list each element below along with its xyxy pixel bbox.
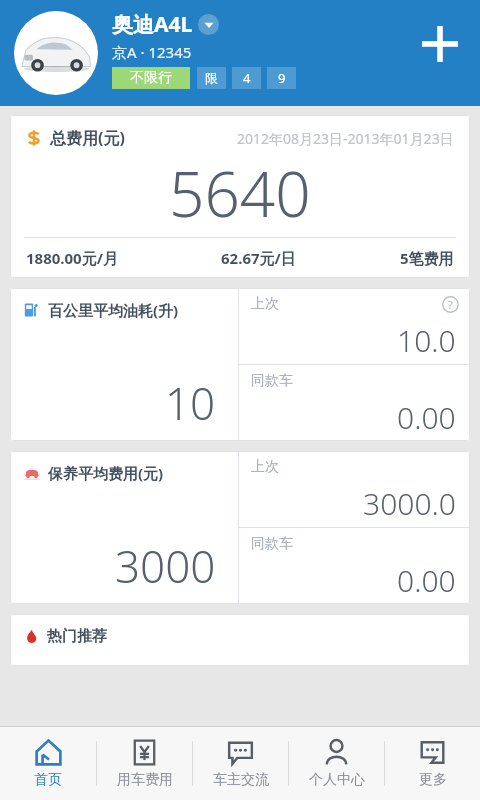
- button[interactable]: 4: [232, 67, 261, 89]
- staticText: 9: [278, 69, 286, 87]
- staticText: 1880.00元/月: [26, 248, 118, 268]
- staticText: 3000: [115, 536, 216, 596]
- staticText: 4: [243, 69, 251, 87]
- staticText: 同款车: [251, 535, 293, 553]
- staticText: 5640: [169, 151, 311, 235]
- staticText: 上次: [251, 295, 279, 313]
- button[interactable]: 用车费用: [97, 727, 192, 800]
- staticText: 不限行: [130, 69, 172, 87]
- button[interactable]: 保养平均费用(元): [10, 451, 238, 604]
- staticText: 奥迪A4L: [112, 10, 193, 39]
- button[interactable]: 同款车: [239, 528, 470, 604]
- staticText: 上次: [251, 458, 279, 476]
- staticText: 0.00: [397, 560, 456, 601]
- staticText: 个人中心: [309, 771, 365, 789]
- staticText: 5笔费用: [400, 248, 454, 268]
- button[interactable]: 热门推荐: [10, 614, 470, 666]
- staticText: 0.00: [397, 397, 456, 438]
- button[interactable]: 9: [267, 67, 296, 89]
- button[interactable]: 车主交流: [193, 727, 288, 800]
- button[interactable]: 上次: [239, 288, 470, 364]
- staticText: 更多: [419, 771, 447, 789]
- button[interactable]: Help: [440, 294, 460, 314]
- staticText: 车主交流: [213, 771, 269, 789]
- staticText: 总费用(元): [50, 127, 125, 149]
- staticText: ?: [448, 297, 453, 312]
- staticText: 用车费用: [117, 771, 173, 789]
- button[interactable]: 个人中心: [289, 727, 384, 800]
- staticText: 保养平均费用(元): [48, 463, 164, 483]
- staticText: 首页: [34, 771, 62, 789]
- staticText: 62.67元/日: [221, 248, 296, 268]
- staticText: 热门推荐: [47, 627, 107, 646]
- staticText: 同款车: [251, 372, 293, 390]
- staticText: 限: [205, 70, 218, 86]
- staticText: 3000.0: [363, 483, 456, 524]
- staticText: 10.0: [397, 320, 456, 361]
- staticText: 2012年08月23日-2013年01月23日: [237, 129, 454, 148]
- button[interactable]: 更多: [385, 727, 480, 800]
- button[interactable]: Vehicle avatar: [14, 11, 98, 95]
- staticText: 10: [165, 373, 216, 433]
- button[interactable]: 上次: [239, 451, 470, 527]
- button[interactable]: 总费用(元): [10, 115, 470, 278]
- staticText: 京A · 12345: [112, 42, 192, 62]
- button[interactable]: 首页: [0, 727, 96, 800]
- button[interactable]: Add vehicle: [416, 20, 464, 68]
- button[interactable]: 百公里平均油耗(升): [10, 288, 238, 441]
- button[interactable]: 限: [197, 67, 226, 89]
- staticText: 百公里平均油耗(升): [48, 300, 179, 320]
- button[interactable]: 同款车: [239, 365, 470, 441]
- button[interactable]: 奥迪A4L: [112, 10, 219, 39]
- button[interactable]: 不限行: [112, 67, 190, 89]
